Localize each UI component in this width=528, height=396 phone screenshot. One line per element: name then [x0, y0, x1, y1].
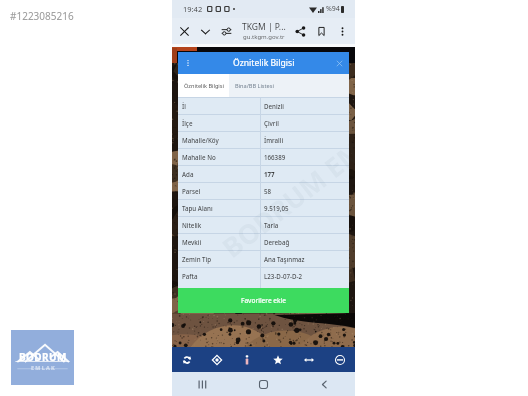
button[interactable]: Share	[290, 18, 311, 44]
button[interactable]: Measure distance	[293, 347, 324, 372]
button[interactable]: Favorites	[262, 347, 293, 372]
button[interactable]: Collapse	[195, 18, 216, 44]
staticText: Tapu Alanı	[182, 204, 264, 212]
button[interactable]: Pafta	[178, 267, 349, 284]
button[interactable]: İlçe	[178, 114, 349, 131]
staticText: Denizli	[264, 102, 284, 110]
button[interactable]: Recent apps	[172, 372, 233, 396]
button[interactable]: Back	[294, 372, 355, 396]
button[interactable]: More options	[332, 18, 353, 44]
button[interactable]: Info	[232, 347, 262, 372]
staticText: Öznitelik Bilgisi	[184, 82, 224, 90]
staticText: Derebağ	[264, 238, 290, 246]
button[interactable]: Mahalle/Köy	[178, 131, 349, 148]
staticText: L23-D-07-D-2	[264, 272, 302, 280]
staticText: 166389	[264, 153, 286, 161]
staticText: Bina/BB Listesi	[235, 82, 274, 90]
button[interactable]: Zemin Tip	[178, 250, 349, 267]
button[interactable]: Print	[324, 347, 355, 372]
staticText: #1223085216	[10, 9, 74, 23]
button[interactable]: Close	[174, 18, 195, 44]
staticText: Çivril	[264, 119, 279, 127]
staticText: Ada	[182, 170, 264, 178]
staticText: İmralli	[264, 136, 284, 144]
button[interactable]: Locate me	[202, 347, 232, 372]
staticText: Mevkii	[182, 238, 264, 246]
button[interactable]: Bookmark	[311, 18, 332, 44]
staticText: BODRUM EMLAK	[214, 124, 355, 266]
staticText: 19:42	[183, 4, 203, 14]
staticText: Nitelik	[182, 221, 264, 229]
button[interactable]: Page settings	[216, 18, 237, 44]
staticText: Ana Taşınmaz	[264, 255, 305, 263]
staticText: Zemin Tip	[182, 255, 264, 263]
button[interactable]: İl	[178, 97, 349, 114]
staticText: 177	[264, 170, 275, 178]
button[interactable]: Bina/BB Listesi	[229, 74, 349, 97]
button[interactable]: Öznitelik Bilgisi	[178, 74, 229, 97]
staticText: 58	[264, 187, 272, 195]
button[interactable]: Ada	[178, 165, 349, 182]
staticText: İl	[182, 102, 264, 110]
button[interactable]: Parsel	[178, 182, 349, 199]
button[interactable]: Refresh	[172, 347, 202, 372]
button[interactable]: Tapu Alanı	[178, 199, 349, 216]
staticText: Pafta	[182, 272, 264, 280]
staticText: Mahalle No	[182, 153, 264, 161]
button[interactable]: Menu	[181, 56, 195, 70]
staticText: Mahalle/Köy	[182, 136, 264, 144]
button[interactable]: Mahalle No	[178, 148, 349, 165]
staticText: BODRUM	[19, 350, 67, 364]
button[interactable]: Close dialog	[332, 56, 346, 70]
staticText: Favorilere ekle	[241, 296, 286, 305]
staticText: Öznitelik Bilgisi	[233, 57, 295, 69]
staticText: 9.519,05	[264, 204, 289, 212]
staticText: EMLAK	[31, 364, 56, 371]
staticText: İlçe	[182, 119, 264, 127]
button[interactable]: Mevkii	[178, 233, 349, 250]
staticText: TKGM | P...	[242, 21, 286, 33]
staticText: gu.tkgm.gov.tr	[243, 33, 285, 41]
button[interactable]: Nitelik	[178, 216, 349, 233]
button[interactable]: Home	[233, 372, 294, 396]
button[interactable]: Favorilere ekle	[178, 288, 349, 313]
staticText: %94	[326, 4, 340, 14]
staticText: Parsel	[182, 187, 264, 195]
staticText: Tarla	[264, 221, 279, 229]
